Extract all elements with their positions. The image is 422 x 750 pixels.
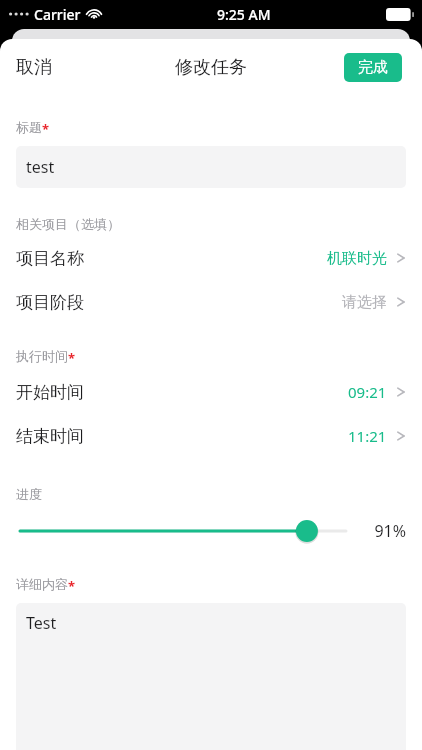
staticText: 修改任务 bbox=[175, 56, 247, 79]
button[interactable]: 结束时间 bbox=[0, 414, 422, 458]
staticText: 标题 bbox=[16, 119, 42, 135]
button[interactable]: Test bbox=[16, 603, 406, 750]
staticText: Test bbox=[26, 612, 57, 634]
staticText: 取消 bbox=[16, 56, 52, 79]
staticText: Carrier bbox=[34, 5, 81, 24]
staticText: 9:25 AM bbox=[217, 5, 271, 24]
button[interactable]: 开始时间 bbox=[0, 370, 422, 414]
staticText: * bbox=[68, 349, 76, 367]
staticText: 项目阶段 bbox=[16, 292, 84, 313]
staticText: * bbox=[68, 577, 76, 595]
staticText: 请选择 bbox=[342, 293, 387, 312]
button[interactable]: 项目阶段 bbox=[0, 280, 422, 324]
staticText: test bbox=[26, 156, 55, 178]
staticText: 执行时间 bbox=[16, 348, 68, 364]
staticText: 项目名称 bbox=[16, 248, 84, 269]
button[interactable]: 项目名称 bbox=[0, 236, 422, 280]
staticText: 相关项目（选填） bbox=[16, 216, 120, 232]
staticText: 结束时间 bbox=[16, 426, 84, 447]
staticText: 机联时光 bbox=[327, 249, 387, 268]
button[interactable]: test bbox=[16, 146, 406, 188]
button[interactable]: Progress slider bbox=[16, 516, 350, 546]
staticText: 91% bbox=[366, 520, 406, 542]
staticText: 09:21 bbox=[348, 382, 387, 402]
staticText: 进度 bbox=[16, 486, 42, 502]
staticText: 完成 bbox=[358, 58, 388, 77]
staticText: 开始时间 bbox=[16, 382, 84, 403]
staticText: 11:21 bbox=[348, 426, 387, 446]
button[interactable]: 取消 bbox=[0, 46, 68, 89]
staticText: 详细内容 bbox=[16, 576, 68, 592]
button[interactable]: 完成 bbox=[344, 53, 402, 82]
staticText: * bbox=[42, 120, 50, 138]
